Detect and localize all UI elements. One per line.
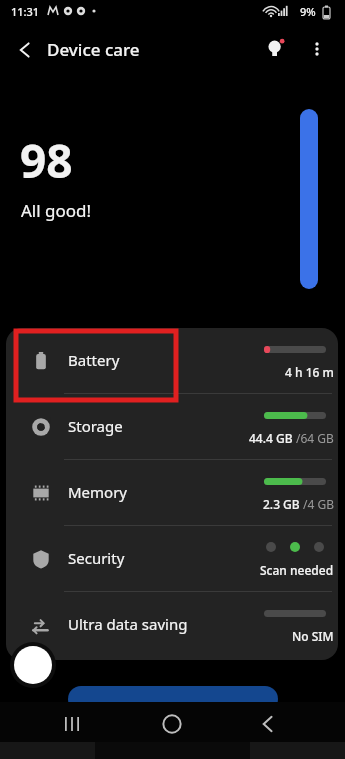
staticText: Storage [68,416,123,436]
staticText: Memory [68,482,128,502]
button[interactable]: Back [10,35,40,65]
button[interactable]: Back [250,706,286,742]
button[interactable] [68,686,278,712]
staticText: 4 h 16 m [285,364,334,380]
staticText: 9% [300,4,316,19]
button[interactable]: Screen recorder [10,642,56,688]
staticText: Device care [47,38,140,61]
staticText: /4 GB [303,496,334,512]
button[interactable]: Recents [54,706,90,742]
button[interactable]: Ultra data saving [6,592,338,657]
staticText: 98 [20,129,73,192]
staticText: Ultra data saving [68,614,188,634]
staticText: 44.4 GB [249,430,296,446]
button[interactable]: Battery [6,328,338,393]
button[interactable]: Tips [262,35,290,63]
staticText: No SIM [292,628,334,644]
button[interactable]: Storage [6,394,338,459]
button[interactable]: More options [303,35,331,63]
button[interactable]: Security [6,526,338,591]
staticText: All good! [21,199,92,222]
staticText: /64 GB [296,430,334,446]
staticText: Battery [68,350,120,370]
staticText: Security [68,548,125,568]
staticText: 2.3 GB [263,496,303,512]
staticText: Scan needed [260,562,334,578]
staticText: 11:31 [11,4,40,19]
button[interactable]: Home [154,706,190,742]
button[interactable]: Memory [6,460,338,525]
